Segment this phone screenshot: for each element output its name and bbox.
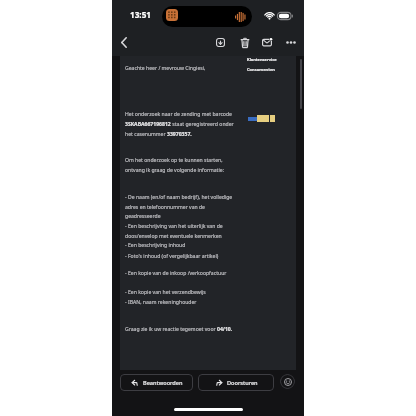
staticText: - Een kopie van het verzendbewijs [125, 289, 206, 296]
button[interactable]: Add reaction [280, 374, 295, 389]
staticText: - Een kopie van de inkoop /verkoopfactuu… [125, 270, 227, 277]
staticText: adres en telefoonnummer van de [125, 204, 205, 211]
staticText: het casenummer [125, 131, 167, 138]
staticText: 13:51 [130, 9, 152, 20]
button[interactable]: Delete [234, 32, 255, 53]
staticText: - Een beschrijving van het uiterlijk van… [125, 223, 223, 230]
staticText: - Een beschrijving inhoud [125, 242, 186, 249]
button[interactable]: Beantwoorden [120, 374, 193, 391]
button[interactable]: Back [112, 31, 134, 53]
staticText: 04/10. [217, 326, 233, 333]
staticText: Doorsturen [227, 379, 258, 387]
staticText: Geachte heer / mevrouw Cingiesi, [125, 65, 206, 72]
staticText: Consumenten [247, 67, 275, 72]
staticText: Graag zie ik uw reactie tegemoet voor [125, 326, 217, 333]
button[interactable]: Doorsturen [198, 374, 274, 391]
staticText: 33970357. [167, 131, 192, 138]
button[interactable]: More options [280, 32, 301, 53]
staticText: Klantenservice [247, 57, 277, 62]
button[interactable]: Archive [210, 32, 231, 53]
staticText: Om het onderzoek op te kunnen starten, [125, 157, 223, 164]
staticText: ontvang ik graag de volgende informatie: [125, 167, 224, 174]
staticText: 3SKABA667196812 [125, 121, 171, 128]
staticText: - IBAN, naam rekeninghouder [125, 299, 197, 306]
staticText: doos/envelop met eventuele kenmerken [125, 233, 222, 240]
staticText: staat geregistreerd onder [171, 121, 234, 128]
button[interactable]: Mark unread [257, 32, 278, 53]
staticText: geadresseerde [125, 213, 161, 220]
staticText: Beantwoorden [143, 379, 183, 387]
staticText: - De naam (en/of naam bedrijf), het voll… [125, 194, 233, 201]
staticText: - Foto's inhoud (of vergelijkbaar artike… [125, 253, 219, 260]
staticText: Het onderzoek naar de zending met barcod… [125, 111, 232, 118]
